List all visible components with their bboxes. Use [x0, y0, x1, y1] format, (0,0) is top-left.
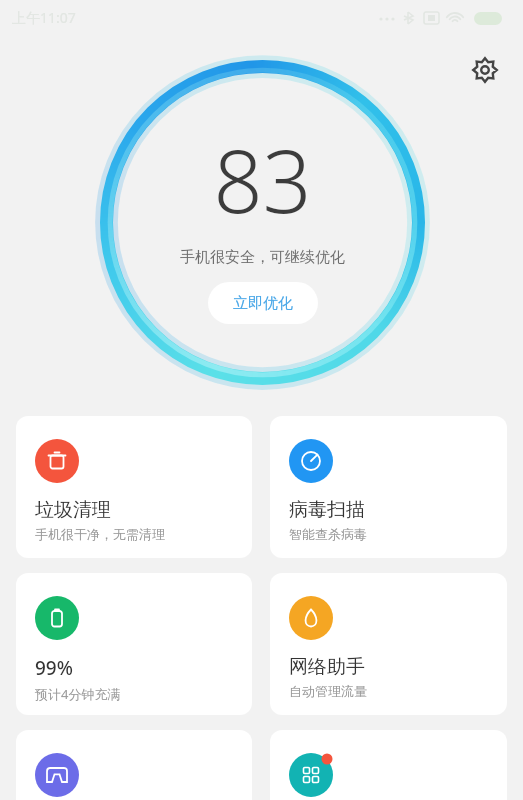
staticText: 立即优化	[233, 294, 293, 313]
staticText: 99%	[35, 655, 73, 681]
staticText: 预计4分钟充满	[35, 685, 121, 703]
button[interactable]: Settings	[462, 47, 508, 93]
button[interactable]: 99%	[16, 573, 252, 715]
staticText: 手机很干净，无需清理	[35, 526, 165, 542]
staticText: 网络助手	[289, 655, 365, 679]
button[interactable]: 病毒扫描	[270, 416, 507, 558]
button[interactable]	[16, 730, 252, 800]
staticText: 上午11:07	[12, 8, 76, 27]
staticText: 手机很安全，可继续优化	[180, 248, 345, 267]
button[interactable]	[270, 730, 507, 800]
staticText: 智能查杀病毒	[289, 526, 367, 542]
staticText: 垃圾清理	[35, 498, 111, 522]
button[interactable]: 垃圾清理	[16, 416, 252, 558]
staticText: 自动管理流量	[289, 683, 367, 699]
button[interactable]: 网络助手	[270, 573, 507, 715]
staticText: 83	[213, 121, 312, 238]
button[interactable]: 立即优化	[208, 282, 318, 324]
staticText: 病毒扫描	[289, 498, 365, 522]
